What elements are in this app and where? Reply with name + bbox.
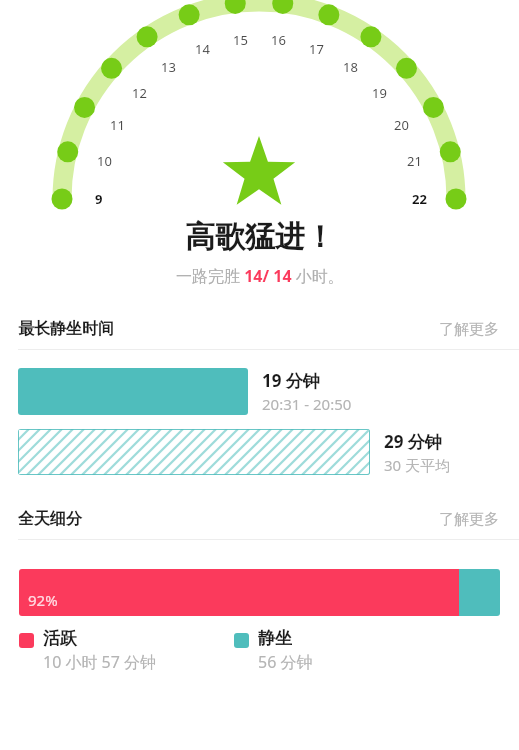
staticText: 一路完胜 14/ 14 小时。	[176, 265, 344, 287]
staticText: 92%	[28, 590, 58, 610]
staticText: 15	[233, 31, 248, 49]
staticText: 16	[271, 31, 286, 49]
staticText: 10 小时 57 分钟	[43, 651, 157, 673]
staticText: 9	[95, 190, 103, 208]
staticText: 19	[372, 84, 387, 102]
staticText: 19 分钟	[262, 369, 320, 392]
staticText: 了解更多	[439, 320, 499, 339]
staticText: 17	[309, 40, 324, 58]
staticText: 高歌猛进！	[185, 218, 335, 256]
staticText: 12	[132, 84, 147, 102]
staticText: 11	[110, 116, 125, 134]
staticText: 14	[195, 40, 210, 58]
staticText: 21	[407, 152, 422, 170]
staticText: 18	[343, 58, 358, 76]
staticText: 全天细分	[18, 509, 82, 529]
staticText: 10	[97, 152, 112, 170]
staticText: 56 分钟	[258, 651, 313, 673]
staticText: 30 天平均	[384, 455, 451, 475]
staticText: 最长静坐时间	[18, 319, 114, 339]
staticText: 29 分钟	[384, 430, 442, 453]
staticText: 20:31 - 20:50	[262, 394, 352, 414]
button[interactable]: 静坐	[234, 628, 434, 673]
button[interactable]: 活跃	[19, 628, 234, 673]
staticText: 20	[394, 116, 409, 134]
button[interactable]: 全天细分	[0, 509, 519, 539]
staticText: 静坐	[258, 628, 292, 649]
staticText: 13	[161, 58, 176, 76]
button[interactable]: 92%	[19, 569, 500, 616]
button[interactable]: 最长静坐时间	[0, 319, 519, 349]
staticText: 了解更多	[439, 510, 499, 529]
staticText: 22	[412, 190, 427, 208]
staticText: 活跃	[43, 628, 77, 649]
